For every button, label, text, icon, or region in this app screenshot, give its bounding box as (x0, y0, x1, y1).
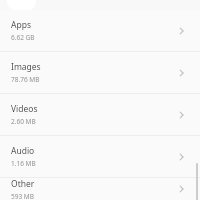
other: Open Videos details (172, 106, 190, 124)
staticText: Audio (11, 145, 35, 157)
button[interactable]: Other (0, 178, 200, 200)
staticText: Videos (11, 103, 38, 115)
staticText: Images (11, 61, 41, 73)
button[interactable]: Images (0, 52, 200, 93)
staticText: 78.76 MB (11, 75, 40, 84)
staticText: 1.16 MB (11, 159, 36, 168)
button[interactable]: Videos (0, 94, 200, 135)
staticText: 593 MB (11, 192, 34, 200)
staticText: 6.62 GB (11, 33, 35, 42)
staticText: 2.60 MB (11, 117, 36, 126)
staticText: Apps (11, 19, 31, 31)
other: Open Apps details (172, 22, 190, 40)
staticText: Other (11, 178, 35, 190)
button[interactable]: Audio (0, 136, 200, 177)
other: Open Audio details (172, 148, 190, 166)
button[interactable]: Apps (0, 10, 200, 51)
other: Open Other details (172, 180, 190, 198)
other: Open Images details (172, 64, 190, 82)
